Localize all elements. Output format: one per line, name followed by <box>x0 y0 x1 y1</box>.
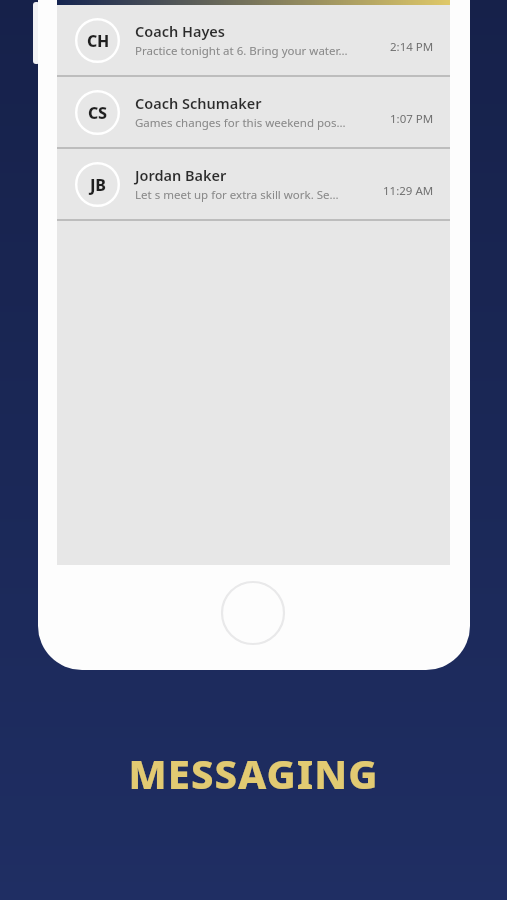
staticText: JB <box>90 174 106 196</box>
button[interactable]: CS <box>57 77 450 147</box>
staticText: MESSAGING <box>0 746 507 800</box>
button[interactable]: Home <box>221 581 285 645</box>
staticText: 2:14 PM <box>390 39 434 55</box>
staticText: Coach Schumaker <box>135 93 262 113</box>
staticText: Practice tonight at 6. Bring your water… <box>135 43 348 59</box>
staticText: Coach Hayes <box>135 21 226 41</box>
button[interactable]: JB <box>57 149 450 219</box>
button[interactable]: CH <box>57 5 450 75</box>
staticText: 11:29 AM <box>383 183 434 199</box>
staticText: Let s meet up for extra skill work. Se… <box>135 187 339 203</box>
staticText: 1:07 PM <box>390 111 434 127</box>
staticText: CH <box>87 30 109 52</box>
staticText: CS <box>88 102 107 124</box>
staticText: Games changes for this weekend pos… <box>135 115 346 131</box>
staticText: Jordan Baker <box>135 165 227 185</box>
